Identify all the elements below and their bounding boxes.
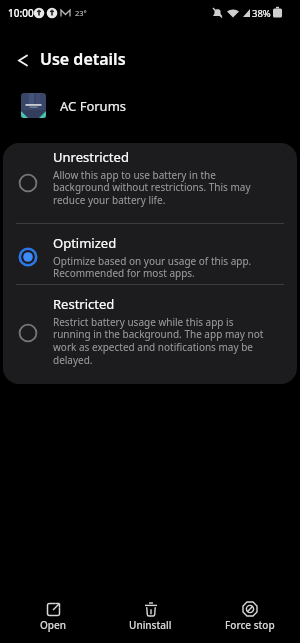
staticText: Force stop (225, 618, 275, 632)
staticText: 10:00 (8, 6, 34, 20)
staticText: Restrict battery usage while this app is… (53, 315, 264, 367)
button[interactable]: Open (40, 602, 67, 632)
staticText: Restricted (53, 295, 115, 313)
button[interactable] (0, 42, 40, 80)
staticText: Open (40, 618, 67, 632)
button[interactable]: Restricted (3, 285, 297, 384)
button[interactable]: Unrestricted (3, 143, 297, 223)
staticText: Use details (40, 48, 126, 70)
staticText: AC Forums (60, 97, 127, 115)
button[interactable]: Uninstall (129, 601, 172, 632)
staticText: Optimize based on your usage of this app… (53, 254, 252, 280)
staticText: Allow this app to use battery in the bac… (53, 168, 251, 207)
button[interactable]: Optimized (3, 224, 297, 284)
staticText: Optimized (53, 234, 117, 252)
button[interactable]: Force stop (225, 601, 275, 632)
staticText: Unrestricted (53, 148, 129, 166)
staticText: Uninstall (129, 618, 172, 632)
staticText: 38% (252, 7, 271, 20)
staticText: 23° (75, 8, 87, 18)
